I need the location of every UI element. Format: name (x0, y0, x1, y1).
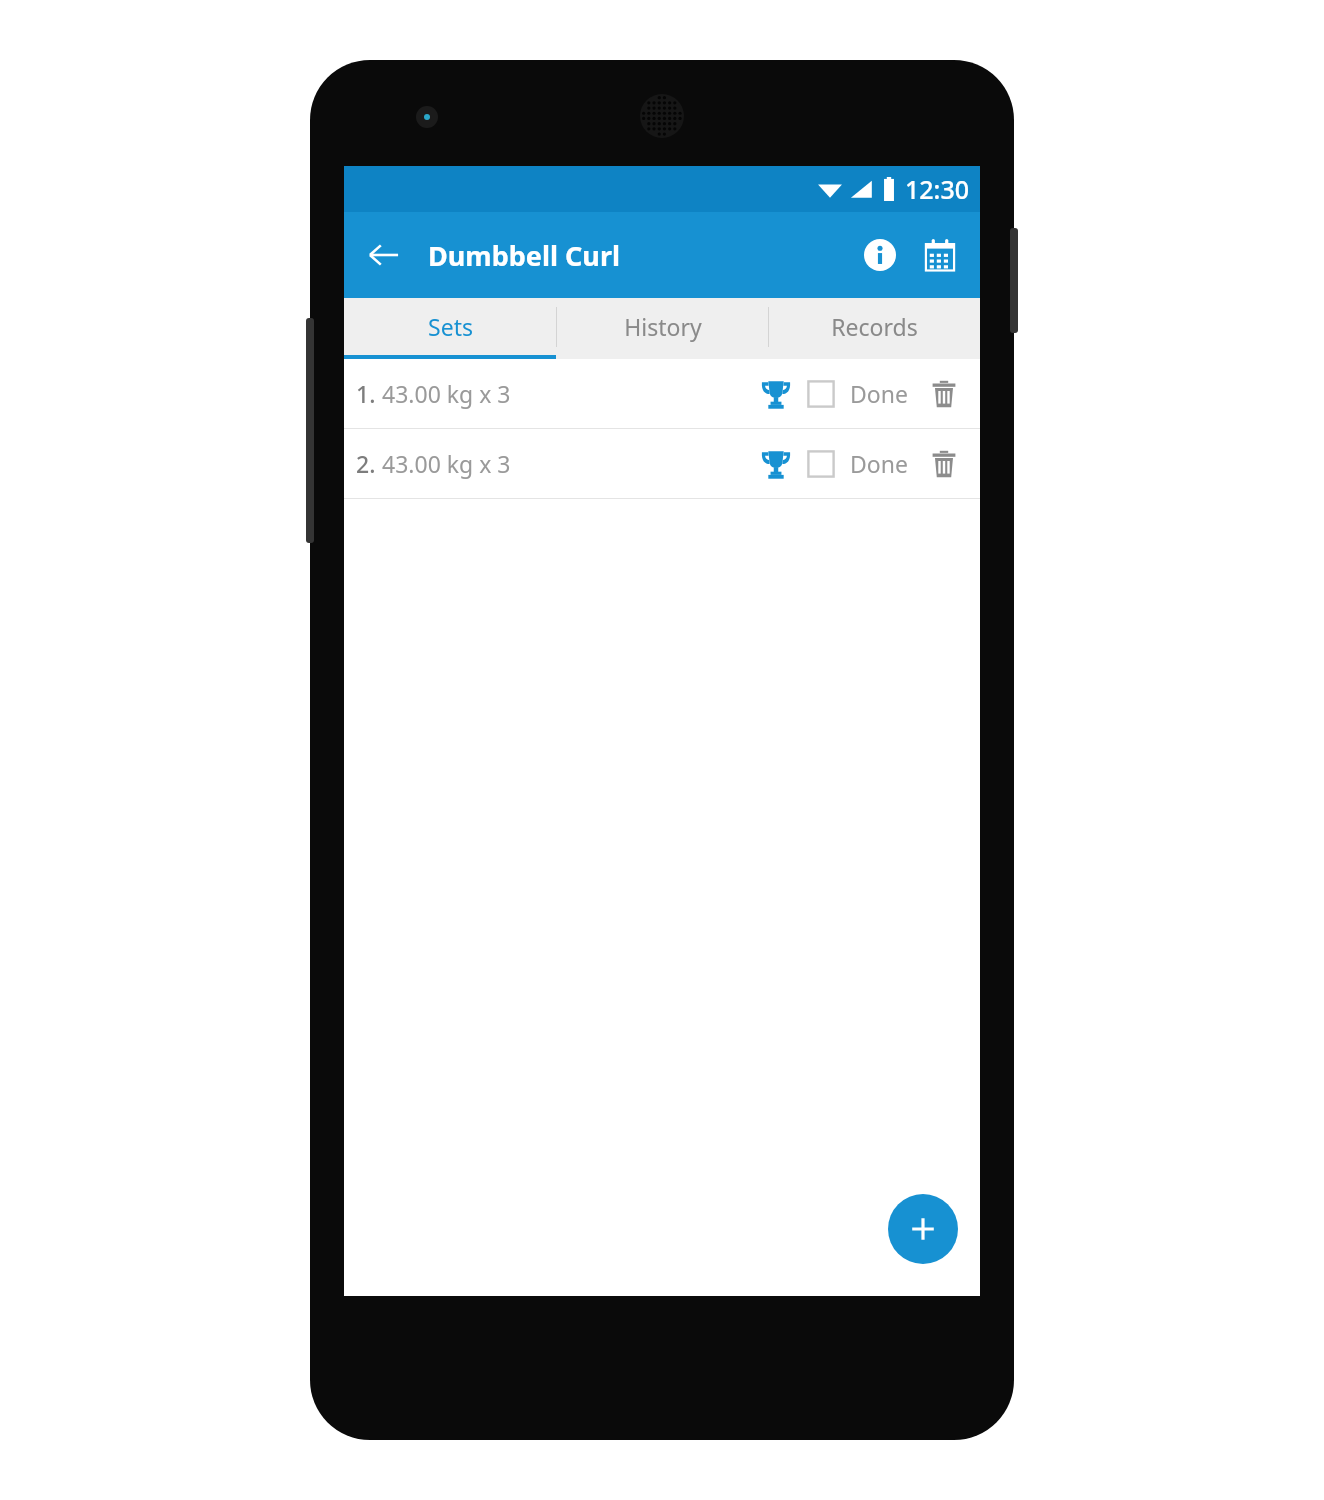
button[interactable]: Calendar (914, 229, 966, 281)
button[interactable]: Back (358, 229, 410, 281)
button[interactable]: Delete set (920, 440, 968, 488)
button[interactable]: Delete set (920, 370, 968, 418)
button[interactable]: Personal record (752, 440, 800, 488)
staticText: History (624, 311, 702, 342)
button[interactable]: Sets (344, 298, 556, 355)
button[interactable]: Add set (888, 1194, 958, 1264)
staticText: 2. (356, 448, 376, 479)
staticText: 12:30 (905, 172, 970, 206)
staticText: 1. (356, 378, 376, 409)
button[interactable]: 2. (344, 429, 980, 498)
staticText: Dumbbell Curl (428, 237, 620, 274)
staticText: 43.00 kg x 3 (382, 448, 511, 479)
button[interactable]: Done (806, 378, 908, 409)
button[interactable]: History (557, 298, 768, 355)
button[interactable]: 1. (344, 359, 980, 428)
staticText: Done (850, 378, 908, 409)
staticText: Done (850, 448, 908, 479)
button[interactable]: Records (769, 298, 980, 355)
button[interactable]: Info (854, 229, 906, 281)
staticText: Sets (428, 311, 473, 342)
button[interactable]: Done (806, 448, 908, 479)
staticText: Records (831, 311, 918, 342)
staticText: 43.00 kg x 3 (382, 378, 511, 409)
button[interactable]: Personal record (752, 370, 800, 418)
